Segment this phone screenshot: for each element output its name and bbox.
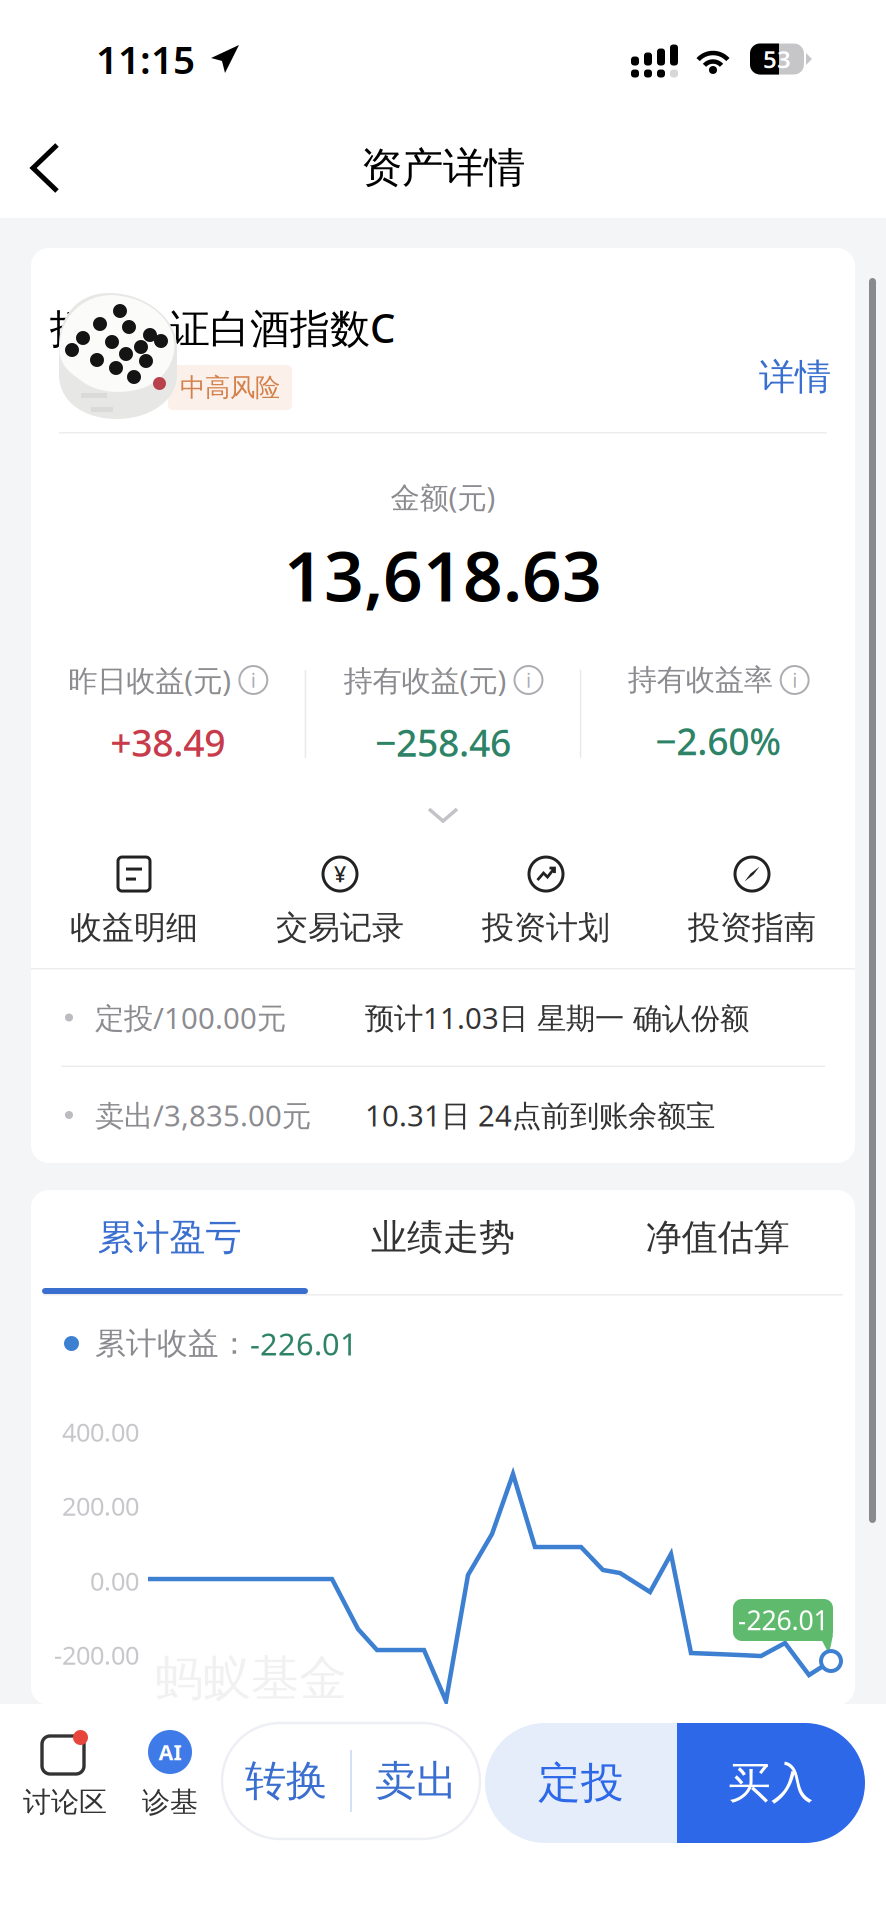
staticText: 11:15 bbox=[96, 33, 195, 85]
button[interactable]: 业绩走势 bbox=[306, 1187, 580, 1294]
button[interactable]: 买入 bbox=[677, 1723, 865, 1843]
staticText: 0.00 bbox=[90, 1564, 139, 1598]
staticText: 诊基 bbox=[142, 1785, 198, 1819]
staticText: −2.60% bbox=[655, 716, 781, 766]
staticText: 资产详情 bbox=[361, 143, 525, 193]
staticText: i bbox=[526, 667, 531, 693]
staticText: 定投/100.00元 bbox=[95, 998, 286, 1037]
staticText: 交易记录 bbox=[276, 908, 404, 947]
staticText: i bbox=[792, 667, 797, 693]
staticText: 投资指南 bbox=[688, 908, 816, 947]
staticText: 昨日收益(元) bbox=[68, 660, 231, 699]
staticText: 400.00 bbox=[62, 1415, 139, 1449]
staticText: 讨论区 bbox=[23, 1785, 107, 1819]
staticText: i bbox=[251, 667, 256, 693]
staticText: 13,618.63 bbox=[284, 528, 602, 621]
button[interactable]: Back bbox=[0, 120, 94, 216]
staticText: 持有收益(元) bbox=[343, 660, 506, 699]
staticText: 定投 bbox=[538, 1757, 624, 1809]
button[interactable]: 累计盈亏 bbox=[31, 1187, 306, 1294]
staticText: 收益明细 bbox=[70, 908, 198, 947]
staticText: ¥ bbox=[334, 860, 346, 888]
button[interactable]: 卖出 bbox=[352, 1723, 480, 1839]
button[interactable]: 净值估算 bbox=[580, 1187, 855, 1294]
button[interactable]: 投资计划 bbox=[443, 853, 649, 951]
staticText: 转换 bbox=[245, 1756, 327, 1806]
button[interactable]: 卖出/3,835.00元 bbox=[31, 1067, 855, 1163]
button[interactable]: AI bbox=[120, 1723, 220, 1819]
button[interactable]: ¥ bbox=[237, 853, 443, 951]
staticText: −258.46 bbox=[375, 717, 511, 767]
staticText: 净值估算 bbox=[646, 1215, 790, 1260]
staticText: 卖出 bbox=[375, 1756, 457, 1806]
staticText: 持有收益率 bbox=[628, 662, 773, 698]
button[interactable]: 定投 bbox=[485, 1723, 677, 1843]
staticText: 累计收益： bbox=[95, 1325, 250, 1362]
staticText: 卖出/3,835.00元 bbox=[95, 1095, 311, 1134]
button[interactable]: 转换 bbox=[222, 1723, 350, 1839]
staticText: 累计盈亏 bbox=[97, 1215, 241, 1260]
staticText: 买入 bbox=[728, 1757, 814, 1809]
staticText: 中高风险 bbox=[180, 372, 280, 403]
staticText: -200.00 bbox=[54, 1638, 139, 1672]
staticText: 投资计划 bbox=[482, 908, 610, 947]
button[interactable]: 讨论区 bbox=[10, 1723, 120, 1819]
staticText: AI bbox=[158, 1738, 181, 1766]
staticText: 金额(元) bbox=[390, 477, 495, 516]
button[interactable]: 定投/100.00元 bbox=[31, 969, 855, 1065]
staticText: 53 bbox=[763, 43, 791, 75]
button[interactable]: 投资指南 bbox=[649, 853, 855, 951]
button[interactable]: 详情 bbox=[749, 345, 841, 409]
staticText: -226.01 bbox=[250, 1323, 358, 1364]
button[interactable]: Expand bbox=[427, 767, 459, 853]
staticText: 200.00 bbox=[62, 1489, 139, 1523]
staticText: 招商中证白酒指数C bbox=[50, 301, 395, 354]
staticText: -226.01 bbox=[737, 1602, 828, 1638]
staticText: +38.49 bbox=[110, 717, 225, 767]
button[interactable]: 收益明细 bbox=[31, 853, 237, 951]
staticText: 业绩走势 bbox=[371, 1215, 515, 1260]
staticText: 详情 bbox=[759, 355, 831, 399]
staticText: 预计11.03日 星期一 确认份额 bbox=[365, 998, 749, 1037]
staticText: 10.31日 24点前到账余额宝 bbox=[365, 1095, 715, 1134]
staticText: 蚂蚁基金 bbox=[155, 1649, 347, 1708]
